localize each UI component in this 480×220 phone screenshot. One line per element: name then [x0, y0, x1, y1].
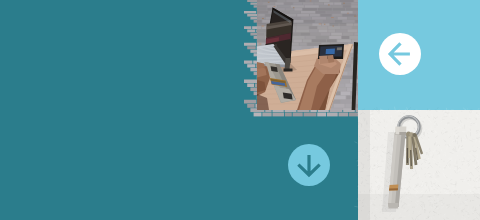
- button[interactable]: Scroll down: [288, 144, 330, 186]
- button[interactable]: Back: [379, 33, 421, 75]
